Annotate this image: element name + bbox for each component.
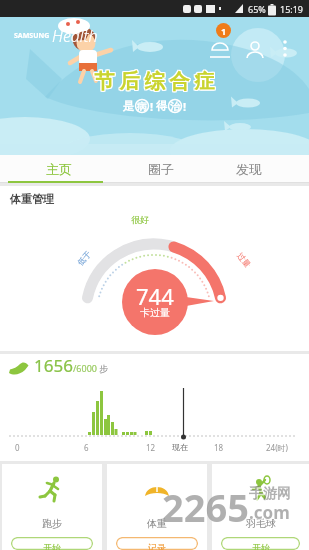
staticText: 65% xyxy=(248,3,266,15)
staticText: 2265 xyxy=(163,482,250,534)
staticText: ! xyxy=(150,99,156,114)
staticText: 744 xyxy=(136,281,174,307)
button[interactable]: 圈子 xyxy=(103,155,206,183)
staticText: .com xyxy=(250,502,291,525)
staticText: 手游网 xyxy=(249,485,291,503)
staticText: 圈子 xyxy=(148,161,174,177)
staticText: 过量 xyxy=(235,251,253,269)
staticText: 开始 xyxy=(43,542,61,550)
staticText: 步 xyxy=(97,362,109,374)
staticText: SAMSUNG xyxy=(14,31,50,41)
staticText: 现在 xyxy=(172,442,188,452)
staticText: 得 xyxy=(156,99,167,113)
staticText: 节后综合症 xyxy=(91,69,216,94)
staticText: 手游网 xyxy=(250,486,292,504)
button[interactable]: 开始 xyxy=(11,537,93,550)
button[interactable]: 跑步 xyxy=(2,464,102,550)
staticText: 低于 xyxy=(75,249,93,267)
staticText: 节后综合症 xyxy=(93,69,218,94)
staticText: 节后综合症 xyxy=(91,70,216,95)
staticText: /6000 xyxy=(73,362,97,374)
staticText: 18 xyxy=(214,442,224,453)
staticText: 15:19 xyxy=(280,3,304,15)
button[interactable]: 1656 xyxy=(0,354,309,461)
staticText: 病 xyxy=(137,100,147,113)
button[interactable]: 记录 xyxy=(116,537,198,550)
staticText: 卡过量 xyxy=(140,306,170,319)
staticText: 是 xyxy=(123,99,134,113)
staticText: 24(时) xyxy=(266,442,288,453)
button[interactable]: 1 xyxy=(216,23,231,38)
staticText: 节后综合症 xyxy=(93,70,218,95)
staticText: 1 xyxy=(221,25,227,37)
staticText: 节后综合症 xyxy=(92,70,217,95)
staticText: 主页 xyxy=(46,161,72,177)
button[interactable]: 主页 xyxy=(0,155,103,183)
staticText: 2265 xyxy=(162,481,249,533)
staticText: 开始 xyxy=(252,542,270,550)
staticText: Health xyxy=(52,25,98,47)
staticText: 节后综合症 xyxy=(92,68,217,93)
staticText: 0 xyxy=(15,442,20,453)
button[interactable]: 发现 xyxy=(206,155,309,183)
staticText: 很好 xyxy=(131,214,149,225)
staticText: 记录 xyxy=(148,542,166,550)
button[interactable]: 开始 xyxy=(221,537,300,550)
staticText: 12 xyxy=(146,442,156,453)
staticText: 体重管理 xyxy=(10,192,54,206)
staticText: 体重 xyxy=(147,517,167,530)
staticText: 1656 xyxy=(34,354,73,377)
staticText: 节后综合症 xyxy=(93,68,218,93)
staticText: 发现 xyxy=(236,161,262,177)
button[interactable] xyxy=(206,37,234,65)
staticText: 治 xyxy=(170,100,180,113)
staticText: 跑步 xyxy=(42,517,62,530)
staticText: 节后综合症 xyxy=(91,68,216,93)
staticText: 6 xyxy=(84,442,89,453)
button[interactable] xyxy=(272,37,296,65)
staticText: 羽毛球 xyxy=(246,517,276,530)
staticText: ! xyxy=(183,99,187,114)
button[interactable]: 羽毛球 xyxy=(212,464,309,550)
button[interactable]: 体重 xyxy=(107,464,207,550)
staticText: .com xyxy=(249,501,290,524)
button[interactable] xyxy=(241,37,269,65)
button[interactable]: 体重管理 xyxy=(0,186,309,351)
staticText: 节后综合症 xyxy=(92,69,217,94)
